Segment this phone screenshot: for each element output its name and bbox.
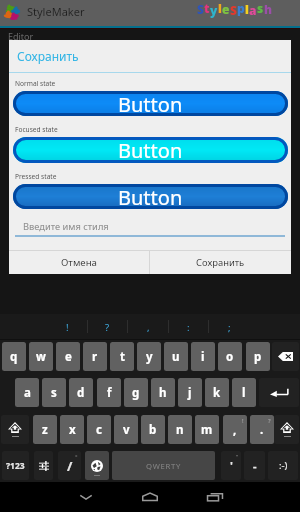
staticText: f: [107, 385, 112, 401]
button[interactable]: Hyphen: [244, 451, 265, 480]
button[interactable]: r: [83, 342, 107, 371]
staticText: s: [257, 0, 264, 16]
button[interactable]: ,: [223, 415, 247, 444]
staticText: e: [222, 1, 230, 17]
button[interactable]: Button: [13, 184, 288, 209]
button[interactable]: d: [69, 378, 93, 407]
staticText: d: [77, 385, 85, 401]
staticText: l: [242, 385, 246, 401]
staticText: Отмена: [61, 256, 97, 269]
button[interactable]: t: [110, 342, 134, 371]
button[interactable]: e: [56, 342, 80, 371]
staticText: e: [65, 349, 72, 365]
staticText: w: [36, 349, 46, 365]
button[interactable]: ,: [128, 315, 168, 339]
button[interactable]: Settings: [34, 451, 53, 480]
button[interactable]: Backspace: [272, 342, 299, 371]
staticText: n: [176, 422, 184, 438]
staticText: c: [96, 422, 102, 438]
button[interactable]: j: [178, 378, 202, 407]
button[interactable]: s: [42, 378, 66, 407]
staticText: S: [230, 2, 237, 18]
staticText: ': [230, 458, 233, 473]
button[interactable]: f: [97, 378, 121, 407]
staticText: j: [188, 385, 192, 401]
staticText: p: [237, 0, 245, 16]
button[interactable]: QWERTY: [112, 451, 215, 480]
staticText: y: [146, 349, 153, 365]
staticText: b: [149, 422, 157, 438]
staticText: u: [172, 349, 180, 365]
button[interactable]: n: [168, 415, 192, 444]
button[interactable]: b: [141, 415, 165, 444]
button[interactable]: Shift: [274, 415, 299, 444]
button[interactable]: Apostrophe: [221, 451, 241, 480]
staticText: p: [254, 349, 262, 365]
button[interactable]: x: [60, 415, 84, 444]
staticText: Button: [118, 137, 183, 163]
staticText: :-): [279, 459, 288, 472]
staticText: y: [210, 2, 218, 18]
button[interactable]: Отмена: [9, 251, 149, 274]
button[interactable]: m: [195, 415, 219, 444]
staticText: S: [197, 1, 204, 17]
staticText: l: [245, 1, 249, 17]
staticText: Введите имя стиля: [23, 220, 109, 233]
button[interactable]: c: [87, 415, 111, 444]
staticText: Button: [118, 184, 183, 209]
button[interactable]: u: [164, 342, 188, 371]
staticText: /: [67, 457, 73, 475]
button[interactable]: o: [218, 342, 242, 371]
button[interactable]: Home: [130, 482, 170, 512]
button[interactable]: k: [205, 378, 229, 407]
button[interactable]: y: [137, 342, 161, 371]
button[interactable]: g: [124, 378, 148, 407]
staticText: :: [187, 321, 190, 334]
staticText: t: [204, 0, 210, 16]
button[interactable]: Hide keyboard: [66, 482, 106, 512]
staticText: k: [213, 385, 221, 401]
button[interactable]: v: [114, 415, 138, 444]
button[interactable]: Сохранить: [150, 251, 291, 274]
staticText: Сохранить: [17, 48, 79, 64]
staticText: Сохранить: [196, 256, 245, 269]
staticText: v: [123, 422, 130, 438]
staticText: s: [51, 385, 57, 401]
button[interactable]: ?: [87, 315, 127, 339]
button[interactable]: a: [15, 378, 39, 407]
button[interactable]: q: [2, 342, 26, 371]
button[interactable]: Symbols: [2, 451, 29, 480]
staticText: ?: [105, 321, 110, 334]
staticText: z: [42, 422, 48, 438]
button[interactable]: h: [151, 378, 175, 407]
button[interactable]: Enter: [259, 378, 299, 407]
button[interactable]: Recents: [195, 482, 235, 512]
button[interactable]: Change keyboard: [85, 451, 109, 480]
staticText: -: [253, 458, 257, 473]
staticText: Button: [118, 91, 183, 116]
staticText: StyleMaker: [27, 4, 85, 19]
staticText: a: [249, 2, 257, 18]
staticText: Pressed state: [15, 172, 57, 181]
button[interactable]: z: [33, 415, 57, 444]
button[interactable]: Slash: [58, 451, 81, 480]
button[interactable]: Emoji: [268, 451, 298, 480]
button[interactable]: l: [232, 378, 256, 407]
button[interactable]: Button: [13, 137, 288, 163]
button[interactable]: !: [47, 315, 87, 339]
button[interactable]: Shift: [1, 415, 29, 444]
button[interactable]: Button: [13, 91, 288, 116]
staticText: ?: [268, 417, 271, 425]
staticText: r: [92, 349, 98, 365]
staticText: a: [24, 385, 31, 401]
button[interactable]: ;: [209, 315, 249, 339]
button[interactable]: p: [246, 342, 270, 371]
button[interactable]: i: [191, 342, 215, 371]
staticText: h: [264, 1, 270, 17]
staticText: ?123: [6, 460, 25, 472]
button[interactable]: :: [168, 315, 208, 339]
button[interactable]: .: [250, 415, 274, 444]
staticText: ,: [233, 422, 237, 438]
staticText: g: [132, 385, 140, 401]
button[interactable]: w: [29, 342, 53, 371]
